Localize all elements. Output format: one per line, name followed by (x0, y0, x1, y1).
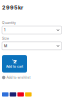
staticText: 2 995 kr (2, 4, 23, 11)
staticText: M (4, 44, 7, 48)
button[interactable]: 1 (2, 26, 62, 34)
button[interactable]: M (2, 42, 62, 50)
staticText: Add to wishlist (7, 76, 31, 79)
button[interactable]: Add to cart (2, 55, 27, 73)
staticText: Size (2, 37, 9, 41)
staticText: 1 (4, 28, 5, 32)
staticText: Quantity (2, 21, 16, 25)
button[interactable]: Add to wishlist (2, 76, 31, 79)
staticText: Add to cart (6, 65, 23, 69)
